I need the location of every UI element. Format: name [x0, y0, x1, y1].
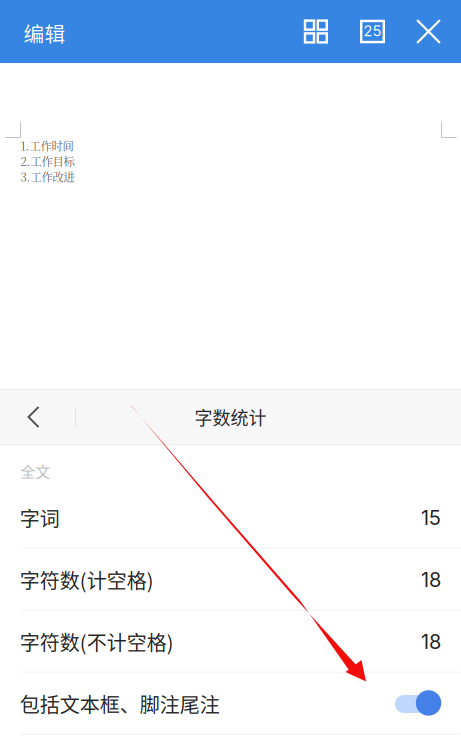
staticText: 25: [363, 22, 381, 40]
staticText: 2.工作目标: [20, 153, 74, 169]
button[interactable]: 编辑: [23, 1, 93, 64]
button[interactable]: 字符数(计空格): [0, 549, 461, 611]
button[interactable]: Back: [5, 389, 61, 445]
staticText: 全文: [20, 460, 50, 482]
staticText: 编辑: [23, 18, 65, 48]
staticText: 字词: [20, 503, 60, 532]
button[interactable]: 字词: [0, 487, 461, 549]
staticText: 字数统计: [194, 404, 266, 430]
staticText: 15: [421, 506, 441, 530]
button[interactable]: Word count: [350, 0, 394, 63]
button[interactable]: 包括文本框、脚注尾注: [0, 673, 461, 735]
staticText: 18: [421, 568, 441, 592]
staticText: 字符数(不计空格): [20, 627, 174, 656]
staticText: 1.工作时间: [20, 137, 73, 154]
button[interactable]: Page layout: [294, 0, 338, 63]
staticText: 包括文本框、脚注尾注: [20, 689, 220, 718]
button[interactable]: Close: [406, 0, 450, 63]
button[interactable]: 字符数(不计空格): [0, 611, 461, 673]
staticText: 3.工作改进: [20, 168, 74, 185]
staticText: 18: [421, 630, 441, 654]
staticText: 字符数(计空格): [20, 565, 154, 594]
